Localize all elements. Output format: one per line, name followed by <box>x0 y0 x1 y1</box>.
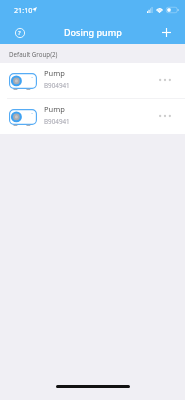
staticText: ? <box>18 29 21 37</box>
staticText: Pump <box>44 68 65 78</box>
staticText: B904941 <box>44 81 70 90</box>
button[interactable]: More options <box>151 103 179 131</box>
button[interactable]: More options <box>151 67 179 95</box>
button[interactable]: Help <box>11 24 28 41</box>
staticText: 21:10 <box>14 5 33 15</box>
staticText: Default Group(2) <box>9 50 58 58</box>
button[interactable]: Pump <box>0 63 185 98</box>
staticText: B904941 <box>44 117 70 126</box>
button[interactable]: Pump <box>0 99 185 134</box>
button[interactable]: Add <box>158 24 175 41</box>
staticText: Pump <box>44 104 65 114</box>
staticText: Dosing pump <box>64 26 122 38</box>
